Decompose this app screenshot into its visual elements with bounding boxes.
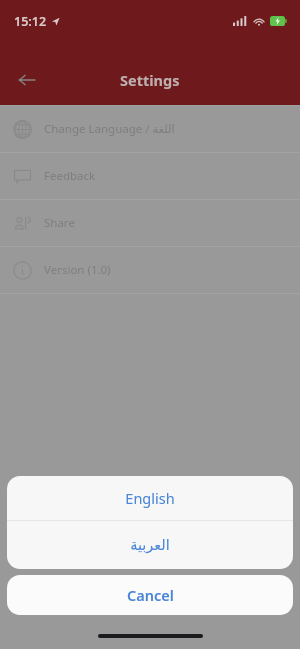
staticText: Feedback <box>44 168 96 184</box>
staticText: Change Language / اللغة <box>44 121 175 137</box>
button[interactable]: Cancel <box>7 575 293 615</box>
staticText: Settings <box>120 70 180 90</box>
staticText: العربية <box>130 537 170 554</box>
staticText: English <box>125 488 175 508</box>
button[interactable]: English <box>7 476 293 520</box>
staticText: Share <box>44 215 75 231</box>
staticText: 15:12 <box>14 13 47 30</box>
button[interactable]: Change Language / اللغة <box>0 106 300 152</box>
button[interactable]: العربية <box>7 521 293 569</box>
staticText: Cancel <box>127 585 174 605</box>
staticText: Version (1.0) <box>44 262 111 278</box>
button[interactable]: Back <box>10 63 44 97</box>
